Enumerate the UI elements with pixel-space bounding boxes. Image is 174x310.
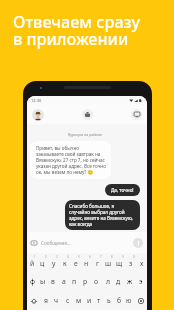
staticText: Спасибо большое, я случайно выбрал друго… xyxy=(69,203,136,227)
staticText: р xyxy=(83,277,88,286)
button[interactable]: Profile xyxy=(32,109,44,121)
button[interactable]: э xyxy=(135,272,146,291)
button[interactable]: г xyxy=(92,253,103,272)
staticText: 6 xyxy=(89,255,91,259)
staticText: н xyxy=(84,259,89,268)
button[interactable]: ь xyxy=(104,291,114,310)
staticText: щ xyxy=(116,259,123,268)
staticText: х xyxy=(140,259,144,268)
staticText: Привет, вы обычно заказываете свой завтр… xyxy=(36,145,107,175)
button[interactable]: ы xyxy=(38,272,48,291)
button[interactable]: р xyxy=(80,272,91,291)
staticText: 8 xyxy=(111,255,113,259)
staticText: 3 xyxy=(56,255,58,259)
button[interactable]: й xyxy=(27,253,37,272)
button[interactable]: о xyxy=(91,272,102,291)
staticText: д xyxy=(116,277,121,286)
staticText: з xyxy=(129,259,133,268)
staticText: м xyxy=(76,296,82,305)
staticText: й xyxy=(30,259,35,268)
staticText: 12:30 xyxy=(31,98,42,103)
button[interactable]: щ xyxy=(114,253,125,272)
staticText: у xyxy=(52,259,56,268)
staticText: ф xyxy=(30,277,36,286)
button[interactable]: Chat xyxy=(131,109,142,120)
staticText: 0 xyxy=(133,255,135,259)
button[interactable]: ц xyxy=(37,253,48,272)
button[interactable]: ш xyxy=(103,253,114,272)
staticText: а xyxy=(62,277,66,286)
button[interactable]: т xyxy=(94,291,104,310)
staticText: ц xyxy=(40,259,45,268)
staticText: ю xyxy=(126,296,132,305)
staticText: 5 xyxy=(78,255,80,259)
button[interactable]: Shift xyxy=(27,291,40,310)
staticText: с xyxy=(66,296,70,305)
staticText: 4 xyxy=(67,255,69,259)
button[interactable]: Backspace xyxy=(134,291,147,310)
staticText: 7 xyxy=(100,255,102,259)
button[interactable]: у xyxy=(48,253,59,272)
button[interactable]: Send xyxy=(133,238,143,248)
staticText: 1 xyxy=(34,255,36,259)
button[interactable]: в xyxy=(48,272,58,291)
staticText: ч xyxy=(54,296,59,305)
button[interactable]: ф xyxy=(28,272,38,291)
staticText: Да, точно! xyxy=(111,187,134,193)
staticText: л xyxy=(106,277,110,286)
staticText: и xyxy=(87,296,92,305)
staticText: ж xyxy=(127,277,133,286)
button[interactable]: а xyxy=(58,272,69,291)
staticText: Сообщение... xyxy=(41,240,71,246)
button[interactable]: з xyxy=(125,253,136,272)
staticText: о xyxy=(94,277,99,286)
staticText: п xyxy=(72,277,77,286)
button[interactable]: п xyxy=(69,272,80,291)
button[interactable]: е xyxy=(70,253,81,272)
staticText: к xyxy=(63,259,67,268)
button[interactable]: Order xyxy=(82,109,93,120)
staticText: ь xyxy=(107,296,111,305)
button[interactable]: д xyxy=(113,272,124,291)
button[interactable]: ч xyxy=(51,291,62,310)
button[interactable]: б xyxy=(114,291,124,310)
staticText: Отвечаем сразу в приложении xyxy=(13,11,141,50)
button[interactable]: л xyxy=(102,272,113,291)
staticText: ы xyxy=(40,277,46,286)
staticText: в xyxy=(51,277,55,286)
button[interactable]: х xyxy=(136,253,147,272)
staticText: г xyxy=(96,259,99,268)
button[interactable]: ю xyxy=(124,291,134,310)
button[interactable]: я xyxy=(40,291,51,310)
staticText: э xyxy=(139,277,143,286)
button[interactable]: и xyxy=(84,291,94,310)
staticText: ш xyxy=(105,259,112,268)
staticText: Курьеры на районе xyxy=(30,132,140,137)
staticText: 2 xyxy=(45,255,47,259)
button[interactable]: к xyxy=(59,253,70,272)
button[interactable]: ж xyxy=(124,272,135,291)
staticText: я xyxy=(44,296,48,305)
staticText: 9 xyxy=(122,255,124,259)
staticText: е xyxy=(74,259,78,268)
staticText: т xyxy=(97,296,101,305)
button[interactable]: с xyxy=(62,291,73,310)
staticText: б xyxy=(117,296,122,305)
button[interactable]: н xyxy=(81,253,92,272)
button[interactable]: м xyxy=(73,291,84,310)
